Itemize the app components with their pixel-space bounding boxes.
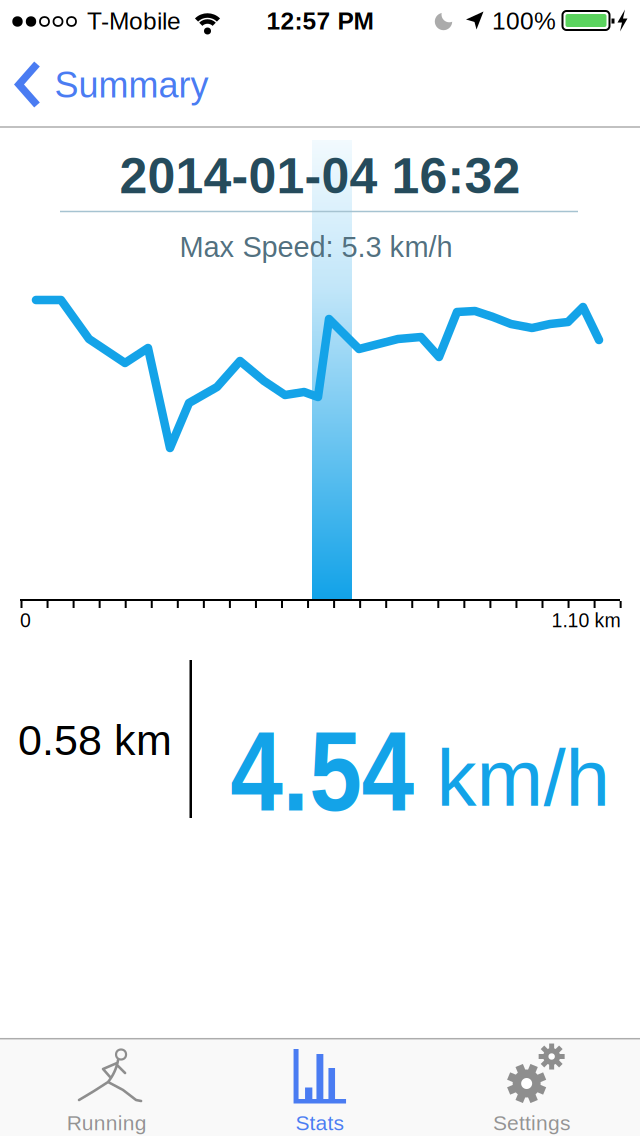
staticText: km/h xyxy=(436,733,609,823)
staticText: Stats xyxy=(295,1111,344,1135)
staticText: Max Speed: 5.3 km/h xyxy=(179,231,452,263)
staticText: 100% xyxy=(492,7,556,35)
staticText: 0 xyxy=(20,610,31,631)
button[interactable]: Running xyxy=(0,1039,213,1136)
staticText: Settings xyxy=(493,1111,571,1135)
staticText: 12:57 PM xyxy=(266,7,373,35)
button[interactable]: Back to Summary xyxy=(10,55,230,115)
staticText: Summary xyxy=(54,65,208,105)
staticText: 1.10 km xyxy=(551,610,620,631)
staticText: 4.54 xyxy=(211,707,432,835)
button[interactable]: Stats xyxy=(213,1039,427,1136)
staticText: T-Mobile xyxy=(87,7,181,35)
staticText: Running xyxy=(67,1111,147,1135)
button[interactable]: Settings xyxy=(427,1039,640,1136)
staticText: 0.58 km xyxy=(18,716,172,764)
staticText: 2014-01-04 16:32 xyxy=(119,148,520,204)
